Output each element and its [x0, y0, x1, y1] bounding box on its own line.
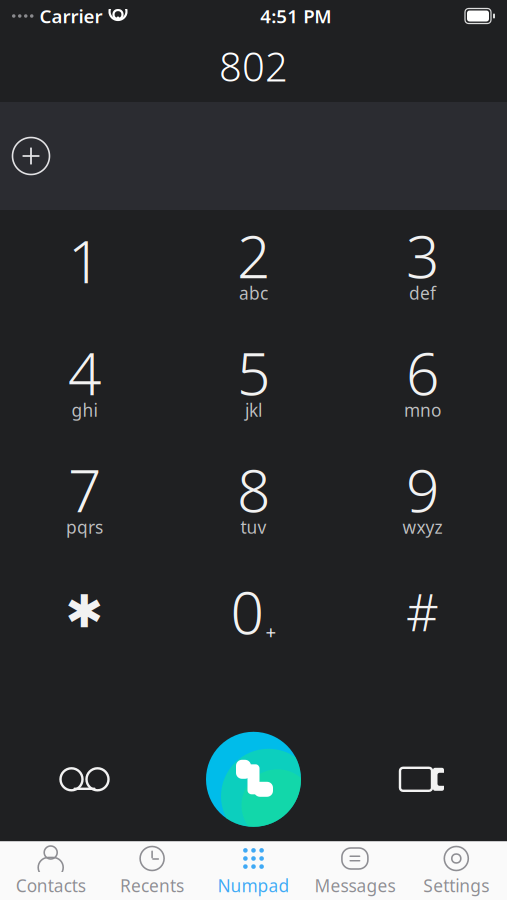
- button[interactable]: #: [338, 569, 507, 669]
- staticText: mno: [404, 398, 441, 421]
- staticText: +: [265, 620, 276, 644]
- button[interactable]: 1: [0, 218, 169, 318]
- staticText: def: [409, 281, 436, 304]
- staticText: #: [406, 578, 439, 645]
- button[interactable]: ✱: [0, 569, 169, 669]
- staticText: Recents: [120, 874, 184, 897]
- staticText: 3: [406, 216, 439, 294]
- button[interactable]: 5: [169, 335, 338, 435]
- staticText: 4: [68, 333, 101, 411]
- button[interactable]: FaceTime: [382, 749, 462, 809]
- staticText: 0: [230, 572, 263, 650]
- staticText: jkl: [245, 398, 262, 421]
- button[interactable]: Call: [206, 732, 301, 827]
- staticText: 4:51 PM: [260, 4, 331, 28]
- staticText: abc: [239, 281, 268, 304]
- button[interactable]: Numpad: [203, 842, 304, 900]
- staticText: ✱: [65, 586, 103, 637]
- button[interactable]: Add Contact: [9, 134, 53, 178]
- button[interactable]: Settings: [406, 842, 507, 900]
- staticText: 9: [406, 450, 439, 528]
- button[interactable]: 6: [338, 335, 507, 435]
- staticText: 7: [68, 450, 101, 528]
- staticText: Settings: [423, 874, 489, 897]
- button[interactable]: Recents: [101, 842, 203, 900]
- button[interactable]: 2: [169, 218, 338, 318]
- button[interactable]: 7: [0, 452, 169, 552]
- button[interactable]: 9: [338, 452, 507, 552]
- staticText: wxyz: [402, 515, 442, 538]
- staticText: pqrs: [66, 515, 103, 538]
- staticText: 1: [68, 221, 101, 299]
- button[interactable]: 3: [338, 218, 507, 318]
- staticText: Contacts: [16, 874, 86, 897]
- staticText: 6: [406, 333, 439, 411]
- staticText: Numpad: [217, 874, 289, 897]
- staticText: 8: [237, 450, 270, 528]
- button[interactable]: Voicemail: [44, 749, 124, 809]
- staticText: Messages: [314, 874, 395, 897]
- button[interactable]: 8: [169, 452, 338, 552]
- button[interactable]: 0: [169, 569, 338, 669]
- button[interactable]: Contacts: [0, 842, 101, 900]
- staticText: 802: [219, 39, 288, 92]
- staticText: 5: [237, 333, 270, 411]
- staticText: Carrier: [39, 4, 102, 28]
- button[interactable]: Messages: [304, 842, 406, 900]
- staticText: ghi: [71, 398, 97, 421]
- button[interactable]: 4: [0, 335, 169, 435]
- staticText: 2: [237, 216, 270, 294]
- staticText: tuv: [240, 515, 266, 538]
